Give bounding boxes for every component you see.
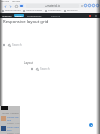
staticText: Search	[12, 43, 22, 47]
button[interactable]: material.io	[26, 4, 79, 8]
button[interactable]: Forward	[8, 4, 12, 8]
staticText: Up next Autoplay	[2, 112, 19, 115]
other: Search	[7, 43, 11, 47]
staticText: Resources	[67, 9, 78, 12]
staticText: channel · 1.2M	[7, 122, 20, 124]
button[interactable]: Downloads	[88, 4, 91, 7]
button[interactable]: Resources	[64, 9, 78, 12]
staticText: Components	[27, 14, 42, 17]
button[interactable]: Getting started	[2, 9, 21, 12]
staticText: material.io	[47, 4, 61, 8]
staticText: Getting started	[5, 9, 21, 12]
staticText: Search	[40, 67, 50, 71]
button[interactable]: Menu	[30, 67, 50, 71]
button[interactable]: Share	[80, 4, 83, 7]
button[interactable]: Material	[2, 14, 12, 17]
staticText: Material Design	[26, 9, 43, 12]
button[interactable]: Menu	[2, 43, 22, 47]
button[interactable]: Sidebar	[14, 4, 18, 8]
staticText: Thumb nail title	[7, 116, 20, 122]
button[interactable]: Tab two	[12, 0, 21, 3]
button[interactable]: New tab	[84, 4, 87, 7]
button[interactable]: Menu	[96, 4, 99, 7]
staticText: Other video item	[7, 126, 20, 132]
button[interactable]: Tabs	[92, 4, 95, 7]
button[interactable]: Back	[3, 4, 7, 8]
staticText: Material	[2, 14, 12, 17]
staticText: Design	[15, 14, 23, 17]
button[interactable]: Tab group	[19, 4, 24, 7]
button[interactable]: Material Design	[23, 9, 43, 12]
button[interactable]: Components	[27, 14, 42, 17]
button[interactable]: Account	[95, 15, 97, 17]
button[interactable]: Tab one	[1, 0, 10, 3]
other: Search	[35, 67, 39, 71]
staticText: Tab two	[12, 0, 21, 3]
staticText: channel · 1.2M	[7, 132, 20, 134]
button[interactable]: Components	[45, 9, 62, 12]
button[interactable]: Develop	[51, 14, 61, 17]
button[interactable]: Other video item	[0, 126, 20, 134]
button[interactable]: Design	[15, 14, 23, 17]
staticText: Develop	[51, 14, 61, 17]
staticText: Components	[48, 9, 62, 12]
button[interactable]: Safari	[89, 123, 93, 127]
other: Menu	[2, 43, 6, 47]
staticText: Layout	[24, 61, 33, 65]
staticText: Tab one	[1, 0, 10, 3]
other: Menu	[30, 67, 34, 71]
staticText: Responsive layout grid	[3, 19, 49, 25]
button[interactable]: Thumb nail title	[0, 116, 20, 124]
